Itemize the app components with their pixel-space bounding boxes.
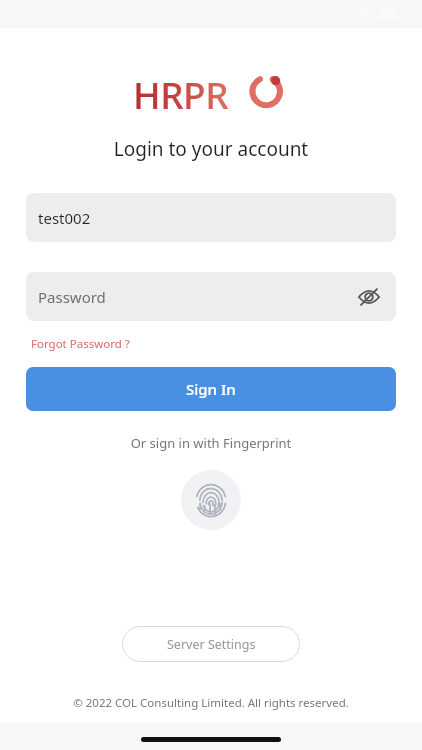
staticText: test002 bbox=[38, 208, 91, 228]
button[interactable]: Show password bbox=[354, 282, 384, 312]
staticText: Forgot Password ? bbox=[31, 336, 130, 352]
staticText: Login to your account bbox=[0, 136, 422, 162]
button[interactable]: Server Settings bbox=[122, 626, 300, 662]
button[interactable]: Password bbox=[26, 272, 396, 321]
button[interactable]: Sign in with fingerprint bbox=[181, 470, 241, 530]
other: HRPRO logo bbox=[133, 69, 289, 109]
staticText: Server Settings bbox=[167, 636, 256, 653]
staticText: Password bbox=[38, 287, 106, 307]
staticText: Or sign in with Fingerprint bbox=[0, 434, 422, 452]
button[interactable]: test002 bbox=[26, 193, 396, 242]
staticText: HRPR bbox=[133, 69, 229, 109]
button[interactable]: Sign In bbox=[26, 367, 396, 411]
button[interactable]: Forgot Password ? bbox=[31, 336, 130, 352]
staticText: © 2022 COL Consulting Limited. All right… bbox=[0, 695, 422, 711]
staticText: Sign In bbox=[186, 379, 236, 399]
